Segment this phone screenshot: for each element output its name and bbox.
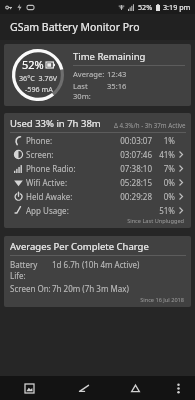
- staticText: Last 30m:: [73, 81, 107, 101]
- staticText: 05:28:15: [114, 177, 152, 188]
- staticText: 51%: [156, 205, 175, 216]
- staticText: 41%: [156, 149, 175, 160]
- staticText: 7%: [156, 163, 175, 174]
- staticText: Phone:: [26, 135, 53, 146]
- button[interactable]: Held Awake:: [10, 189, 186, 203]
- staticText: 7h 20m (7h 3m Max): [52, 283, 129, 294]
- button[interactable]: Phone:: [10, 133, 186, 147]
- staticText: 1d 6.7h (10h 4m Active): [52, 259, 140, 270]
- staticText: 52%: [138, 2, 153, 12]
- staticText: Since 16 Jul 2018: [10, 296, 184, 304]
- staticText: Averages Per Complete Charge: [10, 240, 149, 253]
- staticText: 12:43: [107, 69, 127, 79]
- staticText: 00:29:28: [114, 191, 152, 202]
- staticText: 52%: [22, 57, 44, 72]
- staticText: -596 mA: [25, 84, 53, 94]
- staticText: Since Last Unplugged: [10, 217, 184, 225]
- staticText: Δ 4.3%/h - 3h 37m Active: [114, 121, 186, 129]
- button[interactable]: Home: [109, 376, 161, 400]
- staticText: 03:07:46: [114, 149, 152, 160]
- staticText: Screen On:: [10, 283, 51, 294]
- staticText: 36°C 3.76V: [19, 73, 58, 83]
- staticText: 1%: [156, 135, 175, 146]
- button[interactable]: 52%: [4, 44, 191, 106]
- staticText: Phone Radio:: [26, 163, 76, 174]
- staticText: GSam Battery Monitor Pro: [10, 20, 140, 34]
- staticText: Held Awake:: [26, 191, 73, 202]
- staticText: Screen:: [26, 149, 54, 160]
- staticText: Time Remaining: [73, 50, 146, 63]
- staticText: Used 33% in 7h 38m: [10, 117, 101, 130]
- button[interactable]: Recents: [0, 376, 58, 400]
- staticText: App Usage:: [26, 205, 69, 216]
- button[interactable]: Screen:: [10, 147, 186, 161]
- staticText: Average:: [73, 69, 105, 79]
- button[interactable]: Averages Per Complete Charge: [4, 236, 191, 307]
- staticText: 00:03:07: [114, 135, 152, 146]
- button[interactable]: App Usage:: [10, 203, 186, 217]
- staticText: Battery Life:: [10, 259, 52, 281]
- staticText: 07:38:10: [114, 163, 152, 174]
- button[interactable]: Phone Radio:: [10, 161, 186, 175]
- button[interactable]: Back: [58, 376, 109, 400]
- button[interactable]: More options: [161, 376, 195, 400]
- staticText: 0%: [156, 191, 175, 202]
- staticText: 0%: [156, 177, 175, 188]
- staticText: Wifi Active:: [26, 177, 68, 188]
- staticText: 35:16: [107, 81, 127, 91]
- staticText: 3:19 pm: [163, 2, 191, 12]
- button[interactable]: Wifi Active:: [10, 175, 186, 189]
